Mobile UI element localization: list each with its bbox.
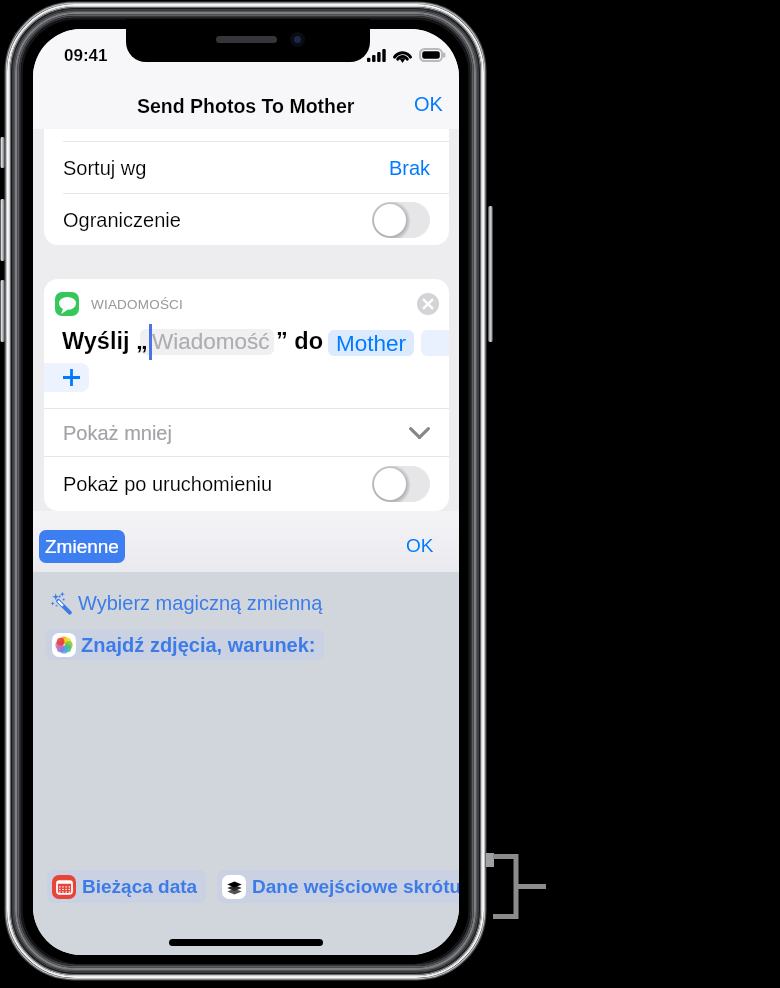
button[interactable]: Toggle: [372, 466, 430, 502]
staticText: OK: [406, 535, 434, 556]
button[interactable]: Zmienne: [39, 530, 125, 563]
button[interactable]: OK: [401, 85, 456, 122]
button[interactable]: Remove action: [417, 293, 439, 315]
staticText: Pokaż po uruchomieniu: [63, 473, 273, 495]
staticText: Wiadomość: [152, 329, 270, 354]
button[interactable]: OK: [389, 526, 451, 564]
button[interactable]: Sortuj wg: [44, 142, 449, 193]
staticText: ” do: [276, 328, 323, 354]
button[interactable]: Add parameter: [44, 363, 89, 392]
staticText: 09:41: [64, 46, 108, 65]
button[interactable]: [140, 329, 274, 355]
button[interactable]: Wybierz magiczną zmienną: [50, 592, 323, 614]
staticText: OK: [414, 93, 443, 115]
button[interactable]: Bieżąca data: [47, 870, 206, 903]
button[interactable]: Ograniczenie: [44, 194, 449, 245]
staticText: Znajdź zdjęcia, warunek:: [81, 634, 316, 656]
button[interactable]: Pokaż mniej: [44, 409, 449, 456]
staticText: Ograniczenie: [63, 209, 181, 231]
button[interactable]: Pokaż po uruchomieniu: [44, 457, 449, 511]
staticText: Bieżąca data: [82, 876, 198, 897]
button[interactable]: Znajdź zdjęcia, warunek:: [46, 629, 324, 660]
staticText: Zmienne: [45, 536, 119, 557]
button[interactable]: Dane wejściowe skrótu: [217, 870, 459, 903]
staticText: Wybierz magiczną zmienną: [78, 592, 323, 614]
staticText: Wyślij „: [62, 328, 148, 354]
staticText: Send Photos To Mother: [137, 95, 355, 117]
button[interactable]: Toggle: [372, 202, 430, 238]
staticText: WIADOMOŚCI: [91, 297, 183, 312]
staticText: Brak: [389, 157, 431, 179]
button[interactable]: Mother: [328, 330, 414, 356]
staticText: Mother: [336, 331, 407, 356]
staticText: Dane wejściowe skrótu: [252, 876, 459, 897]
staticText: Sortuj wg: [63, 157, 147, 179]
staticText: Pokaż mniej: [63, 422, 172, 444]
button[interactable]: Send Photos To Mother: [33, 87, 459, 124]
